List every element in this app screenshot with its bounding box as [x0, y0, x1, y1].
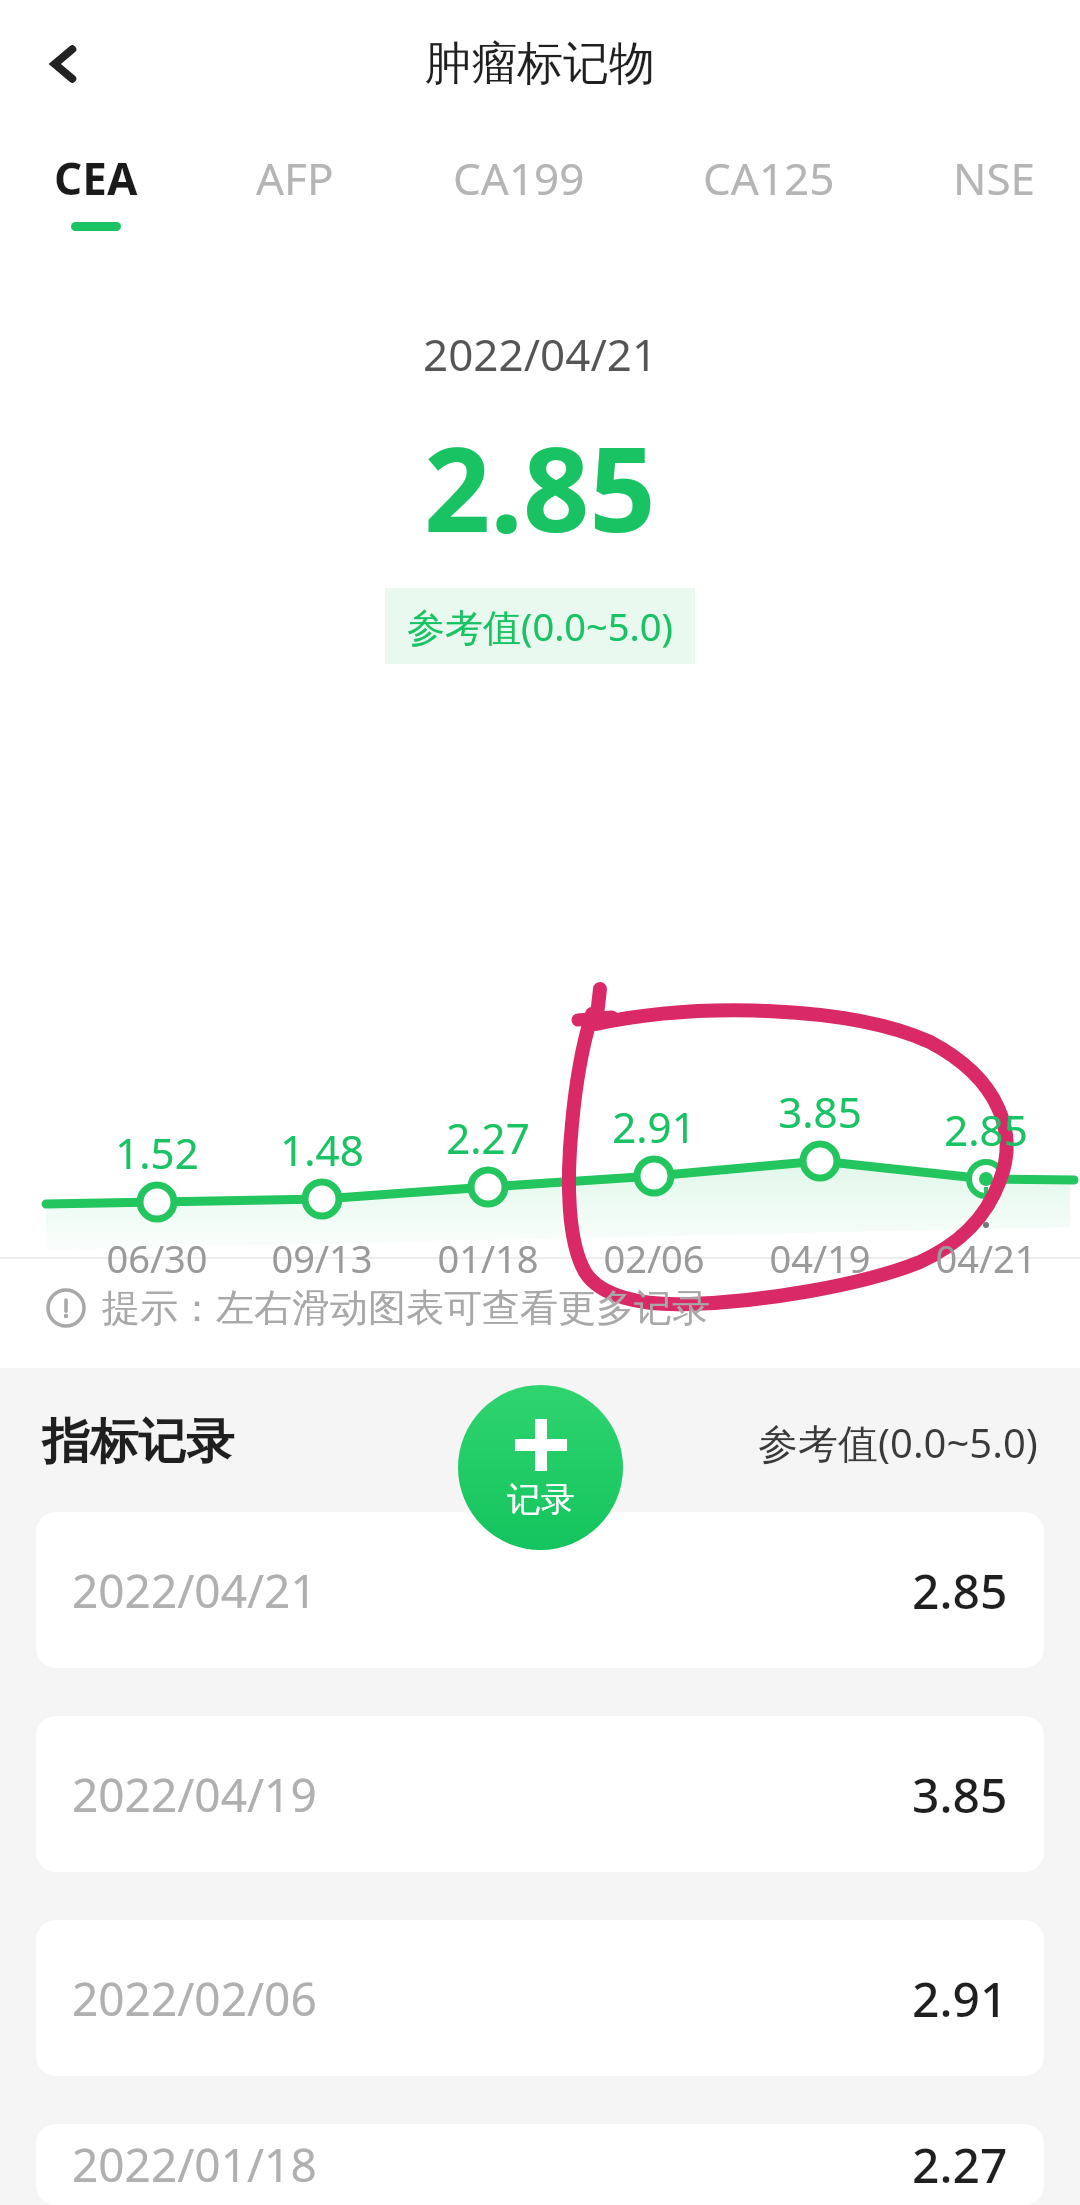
staticText: 肿瘤标记物 — [425, 35, 655, 93]
staticText: AFP — [256, 148, 334, 208]
button[interactable]: AFP — [242, 128, 348, 222]
button[interactable]: Back — [22, 22, 106, 106]
staticText: 2.85 — [912, 1558, 1008, 1623]
staticText: 2.85 — [424, 408, 656, 566]
staticText: 02/06 — [592, 1232, 716, 1284]
staticText: 09/13 — [260, 1232, 384, 1284]
staticText: 2.27 — [912, 2132, 1008, 2197]
staticText: CA125 — [703, 148, 835, 208]
staticText: 提示：左右滑动图表可查看更多记录 — [102, 1284, 710, 1332]
staticText: 参考值(0.0~5.0) — [758, 1415, 1038, 1470]
staticText: 2.85 — [934, 1101, 1038, 1158]
staticText: 2022/04/21 — [72, 1559, 317, 1622]
staticText: 3.85 — [768, 1083, 872, 1140]
button[interactable]: 2022/04/19 — [36, 1716, 1044, 1872]
staticText: 指标记录 — [42, 1412, 234, 1472]
button[interactable]: CA199 — [439, 128, 599, 222]
staticText: 06/30 — [95, 1232, 219, 1284]
staticText: 2.91 — [912, 1966, 1008, 2031]
staticText: 1.52 — [105, 1124, 209, 1181]
staticText: 1.48 — [270, 1121, 374, 1178]
staticText: 2.91 — [602, 1098, 706, 1155]
staticText: 3.85 — [912, 1762, 1008, 1827]
staticText: 记录 — [507, 1478, 575, 1521]
staticText: CA199 — [453, 148, 585, 208]
button[interactable]: CA125 — [689, 128, 849, 222]
staticText: 04/21 — [924, 1232, 1048, 1284]
staticText: 参考值(0.0~5.0) — [407, 600, 673, 652]
button[interactable]: 2022/04/21 — [36, 1512, 1044, 1668]
staticText: CEA — [54, 148, 138, 208]
staticText: 2022/04/19 — [72, 1763, 317, 1826]
staticText: 2022/04/21 — [423, 324, 658, 384]
staticText: NSE — [953, 148, 1036, 208]
staticText: 2.27 — [436, 1109, 540, 1166]
staticText: 01/18 — [426, 1232, 550, 1284]
button[interactable]: 添加记录 — [458, 1385, 623, 1550]
button[interactable]: NSE — [939, 128, 1050, 222]
staticText: 2022/01/18 — [72, 2133, 317, 2196]
button[interactable]: 2022/02/06 — [36, 1920, 1044, 2076]
staticText: 04/19 — [758, 1232, 882, 1284]
staticText: 2022/02/06 — [72, 1967, 317, 2030]
button[interactable]: CEA — [40, 128, 152, 231]
button[interactable]: 2022/01/18 — [36, 2124, 1044, 2205]
